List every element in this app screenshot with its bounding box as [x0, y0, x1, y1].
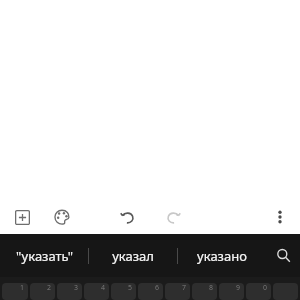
button[interactable]: указал — [89, 234, 177, 277]
button[interactable]: Undo — [113, 203, 141, 231]
staticText: 4 — [101, 283, 106, 293]
button[interactable]: Themes — [48, 203, 76, 231]
button[interactable]: 5 — [111, 283, 136, 300]
button[interactable]: Search — [266, 234, 300, 277]
staticText: указал — [112, 247, 154, 265]
staticText: "указать" — [16, 247, 73, 265]
staticText: 9 — [236, 283, 241, 293]
staticText: 2 — [47, 283, 52, 293]
staticText: 1 — [20, 283, 25, 293]
button[interactable]: 2 — [30, 283, 55, 300]
button[interactable]: 3 — [57, 283, 82, 300]
button[interactable]: "указать" — [0, 234, 88, 277]
staticText: 3 — [74, 283, 79, 293]
staticText: 5 — [128, 283, 133, 293]
button[interactable]: указано — [178, 234, 266, 277]
button[interactable]: More options — [266, 203, 294, 231]
button[interactable]: Insert — [8, 203, 36, 231]
button[interactable]: 9 — [219, 283, 244, 300]
button[interactable]: 0 — [246, 283, 271, 300]
staticText: 6 — [155, 283, 160, 293]
staticText: указано — [197, 247, 247, 265]
staticText: 7 — [182, 283, 187, 293]
button[interactable]: 7 — [165, 283, 190, 300]
button[interactable]: 8 — [192, 283, 217, 300]
button[interactable]: 6 — [138, 283, 163, 300]
button[interactable]: 4 — [84, 283, 109, 300]
button[interactable]: Redo — [159, 203, 187, 231]
button[interactable]: 1 — [2, 283, 28, 300]
staticText: 0 — [263, 283, 268, 293]
staticText: 8 — [209, 283, 214, 293]
